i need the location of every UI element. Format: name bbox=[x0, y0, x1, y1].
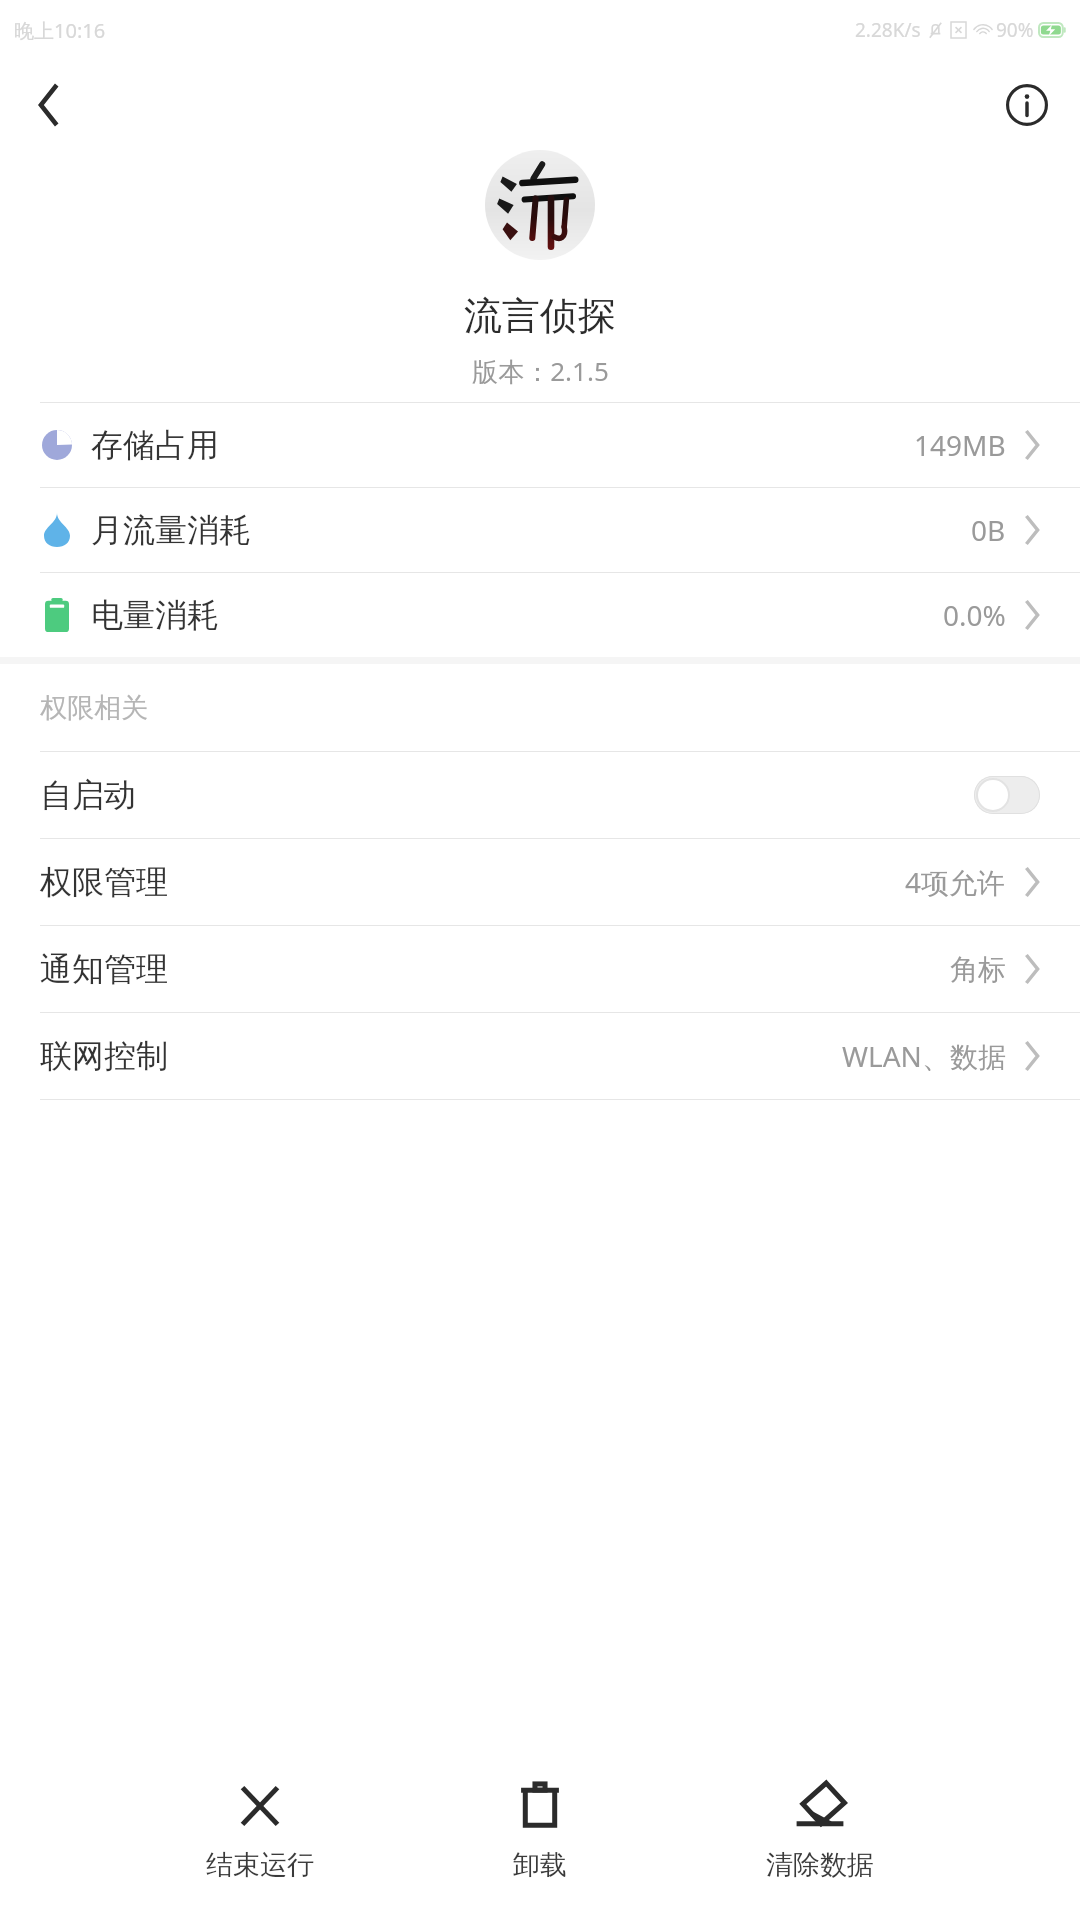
button[interactable]: 联网控制 bbox=[0, 1013, 1080, 1099]
staticText: 晚上10:16 bbox=[14, 17, 106, 44]
staticText: 自启动 bbox=[40, 775, 136, 815]
staticText: 90% bbox=[996, 17, 1034, 43]
staticText: WLAN、数据 bbox=[842, 1037, 1006, 1075]
staticText: 0B bbox=[971, 511, 1006, 549]
button[interactable]: 结束运行 bbox=[170, 1770, 350, 1890]
staticText: 权限相关 bbox=[40, 691, 148, 725]
staticText: 149MB bbox=[914, 426, 1006, 464]
staticText: 4项允许 bbox=[905, 863, 1006, 901]
staticText: 0.0% bbox=[943, 596, 1006, 634]
button[interactable]: 清除数据 bbox=[730, 1770, 910, 1890]
staticText: 通知管理 bbox=[40, 949, 168, 989]
button[interactable]: 存储占用 bbox=[0, 403, 1080, 487]
staticText: 结束运行 bbox=[206, 1848, 314, 1882]
staticText: 流言侦探 bbox=[464, 292, 616, 340]
staticText: 月流量消耗 bbox=[91, 510, 251, 550]
staticText: 权限管理 bbox=[40, 862, 168, 902]
button[interactable]: Back bbox=[22, 77, 78, 133]
staticText: 版本：2.1.5 bbox=[472, 353, 609, 389]
staticText: 清除数据 bbox=[766, 1848, 874, 1882]
button[interactable]: 通知管理 bbox=[0, 926, 1080, 1012]
button[interactable]: 电量消耗 bbox=[0, 573, 1080, 657]
staticText: 角标 bbox=[950, 952, 1006, 987]
button[interactable]: 权限管理 bbox=[0, 839, 1080, 925]
button[interactable]: 卸载 bbox=[450, 1770, 630, 1890]
staticText: 2.28K/s bbox=[855, 17, 921, 43]
button[interactable]: 自启动 bbox=[0, 752, 1080, 838]
staticText: 存储占用 bbox=[91, 425, 219, 465]
button[interactable]: App info bbox=[998, 76, 1056, 134]
staticText: 电量消耗 bbox=[91, 595, 219, 635]
button[interactable]: 月流量消耗 bbox=[0, 488, 1080, 572]
staticText: 卸载 bbox=[513, 1848, 567, 1882]
staticText: 联网控制 bbox=[40, 1036, 168, 1076]
